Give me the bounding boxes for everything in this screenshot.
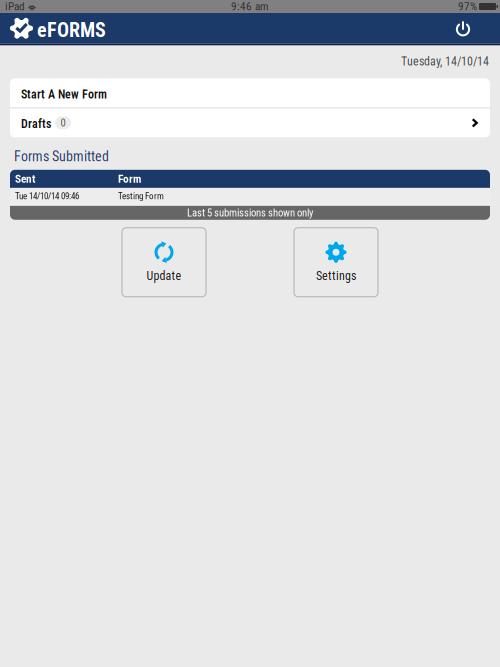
staticText: 0 — [60, 117, 65, 129]
button[interactable]: Update — [122, 228, 206, 297]
button[interactable]: Log out — [448, 13, 478, 43]
staticText: Tuesday, 14/10/14 — [401, 54, 489, 68]
staticText: Update — [146, 269, 181, 283]
staticText: Forms Submitted — [14, 148, 109, 165]
staticText: Sent — [15, 172, 35, 185]
staticText: Last 5 submissions shown only — [187, 206, 313, 219]
button[interactable]: Start A New Form — [10, 78, 490, 107]
staticText: Drafts — [21, 117, 51, 131]
button[interactable]: Drafts — [10, 108, 490, 137]
staticText: Testing Form — [118, 191, 164, 202]
staticText: eFORMS — [37, 18, 106, 42]
staticText: iPad — [5, 0, 25, 13]
staticText: Start A New Form — [21, 87, 107, 101]
staticText: Form — [118, 172, 141, 185]
staticText: Settings — [316, 269, 356, 283]
staticText: Tue 14/10/14 09:46 — [15, 191, 79, 202]
staticText: 9:46 am — [231, 0, 269, 13]
button[interactable]: Settings — [294, 228, 378, 297]
staticText: 97% — [458, 0, 477, 13]
